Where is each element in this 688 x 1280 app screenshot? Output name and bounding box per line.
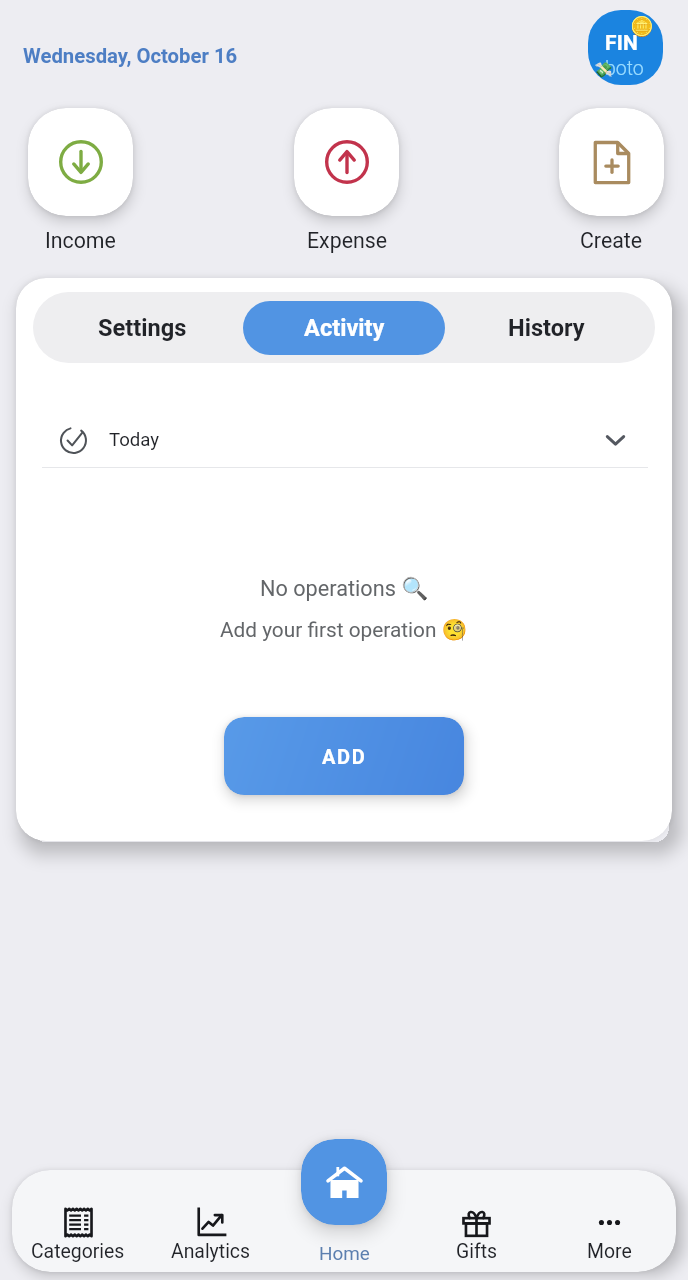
staticText: Home — [319, 1242, 370, 1264]
staticText: Gifts — [456, 1240, 498, 1263]
staticText: ADD — [322, 745, 367, 768]
staticText: Activity — [304, 314, 385, 342]
button[interactable]: Home — [301, 1139, 387, 1225]
button[interactable]: Income — [28, 108, 133, 253]
button[interactable]: Settings — [41, 293, 243, 363]
staticText: Add your first operation 🧐 — [220, 618, 468, 642]
staticText: Today — [109, 429, 160, 451]
staticText: History — [508, 314, 585, 342]
staticText: Income — [45, 228, 116, 253]
staticText: boto — [605, 57, 644, 80]
staticText: Settings — [98, 314, 187, 342]
button[interactable]: ADD — [224, 717, 464, 795]
button[interactable]: Expense — [294, 108, 399, 253]
button[interactable]: Gifts — [410, 1170, 543, 1263]
staticText: Categories — [31, 1240, 125, 1263]
button[interactable]: FINboto profile — [588, 10, 663, 85]
staticText: More — [587, 1240, 632, 1263]
staticText: Create — [580, 228, 643, 253]
other: Expense — [325, 140, 369, 184]
button[interactable]: History — [445, 293, 647, 363]
staticText: Analytics — [171, 1240, 251, 1263]
staticText: 💸 — [594, 61, 613, 79]
staticText: No operations 🔍 — [260, 576, 429, 601]
staticText: 🪙 — [630, 15, 654, 37]
staticText: FIN — [605, 31, 639, 56]
button[interactable]: Today — [60, 413, 625, 467]
staticText: Expense — [307, 228, 387, 253]
button[interactable]: Categories — [12, 1170, 144, 1263]
button[interactable]: Activity — [243, 301, 445, 355]
button[interactable]: Create — [559, 108, 664, 253]
other: Expand — [606, 434, 625, 447]
other: Income — [59, 140, 103, 184]
staticText: Wednesday, October 16 — [23, 44, 238, 68]
button[interactable]: Analytics — [144, 1170, 277, 1263]
other: Create — [590, 140, 634, 185]
button[interactable]: More — [543, 1170, 676, 1263]
